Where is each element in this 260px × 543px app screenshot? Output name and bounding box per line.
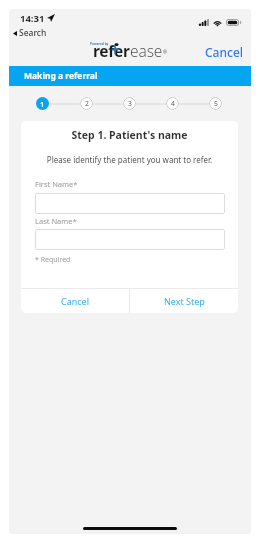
staticText: Powered by <box>90 42 109 46</box>
button[interactable]: Search <box>13 27 47 39</box>
staticText: Step 1. Patient's name <box>21 128 238 142</box>
staticText: ® <box>163 49 168 56</box>
staticText: Cancel <box>61 295 90 307</box>
staticText: 3 <box>128 99 132 108</box>
staticText: 5 <box>214 99 218 108</box>
staticText: 4 <box>171 99 175 108</box>
staticText: 2 <box>85 99 89 108</box>
button[interactable]: Step 2 <box>80 97 93 110</box>
button[interactable]: Step 5 <box>209 97 222 110</box>
staticText: First Name* <box>35 179 78 189</box>
button[interactable]: Next Step <box>130 289 238 313</box>
staticText: refer <box>93 40 130 61</box>
staticText: Last Name* <box>35 216 77 226</box>
button[interactable]: Step 1 <box>36 97 49 110</box>
button[interactable] <box>35 229 225 250</box>
staticText: ease <box>130 40 163 61</box>
button[interactable]: Cancel <box>21 289 129 313</box>
staticText: Please identify the patient you want to … <box>21 154 238 165</box>
staticText: Making a referral <box>24 70 98 82</box>
button[interactable] <box>35 193 225 214</box>
staticText: Cancel <box>205 44 244 60</box>
staticText: 1 <box>40 99 45 109</box>
button[interactable]: Making a referral <box>9 66 251 86</box>
button[interactable]: Step 4 <box>166 97 179 110</box>
staticText: 14:31 <box>20 12 45 25</box>
staticText: Search <box>19 27 47 39</box>
button[interactable]: Step 3 <box>123 97 136 110</box>
button[interactable]: Cancel <box>205 44 244 60</box>
staticText: Next Step <box>164 295 205 307</box>
staticText: * Required <box>35 255 71 265</box>
